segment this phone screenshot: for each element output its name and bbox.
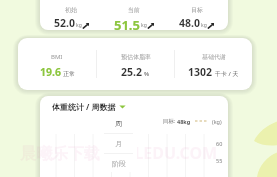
staticText: 千卡 / 天 [215,70,239,78]
button[interactable]: 周 [100,114,137,133]
staticText: 体重统计 / 周数据 [52,101,116,112]
staticText: 48.0 [179,16,200,30]
button[interactable]: 当前 [102,6,165,30]
staticText: 当前 [128,6,140,14]
staticText: 51.5 [114,16,140,30]
staticText: 25.2 [121,65,142,79]
staticText: 阶段 [112,159,126,168]
staticText: 60 [216,140,223,147]
staticText: 月 [115,139,122,148]
staticText: 预估体脂率 [121,53,151,61]
staticText: 目标: [163,117,177,125]
staticText: 52.0 [54,16,75,30]
staticText: 48kg [177,118,191,125]
staticText: kg [76,22,82,29]
staticText: % [144,70,150,78]
button[interactable]: 基础代谢 [175,53,252,79]
staticText: 55 [216,157,223,164]
staticText: 1302 [188,65,213,79]
staticText: 基础代谢 [202,53,226,61]
staticText: BMI [51,53,63,61]
staticText: 正常 [63,70,75,78]
button[interactable]: 体重统计 / 周数据 [52,101,126,112]
staticText: 19.6 [40,65,61,79]
button[interactable]: 预估体脂率 [97,53,174,79]
button[interactable]: 月 [100,134,137,153]
button[interactable]: 目标 [165,6,228,30]
staticText: kg [141,22,147,29]
staticText: 周 [115,119,122,128]
button[interactable]: 初始 [40,6,102,30]
staticText: 目标 [191,6,203,14]
staticText: 初始 [65,6,77,14]
staticText: kg [201,22,207,29]
button[interactable]: 阶段 [100,154,137,172]
staticText: 晨曦乐下载→CXLEDU.COM [20,142,218,164]
button[interactable]: BMI [18,53,96,79]
staticText: (kg) [212,118,222,125]
